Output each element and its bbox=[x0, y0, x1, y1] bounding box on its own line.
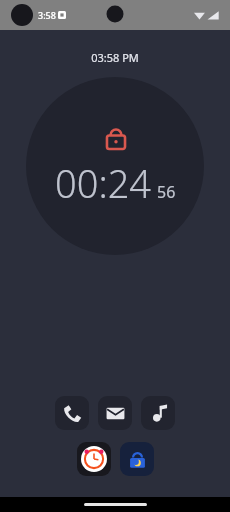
staticText: 03:58 PM bbox=[91, 50, 139, 65]
button[interactable]: Music bbox=[141, 396, 175, 430]
staticText: 56 bbox=[157, 181, 176, 203]
button[interactable]: App Lock bbox=[120, 442, 154, 476]
button[interactable]: Email bbox=[98, 396, 132, 430]
button[interactable]: Clock bbox=[77, 442, 111, 476]
staticText: 00:24 bbox=[55, 157, 152, 209]
staticText: 3:58 bbox=[38, 9, 56, 21]
button[interactable]: 00:24 bbox=[26, 77, 204, 255]
button[interactable]: Phone bbox=[55, 396, 89, 430]
